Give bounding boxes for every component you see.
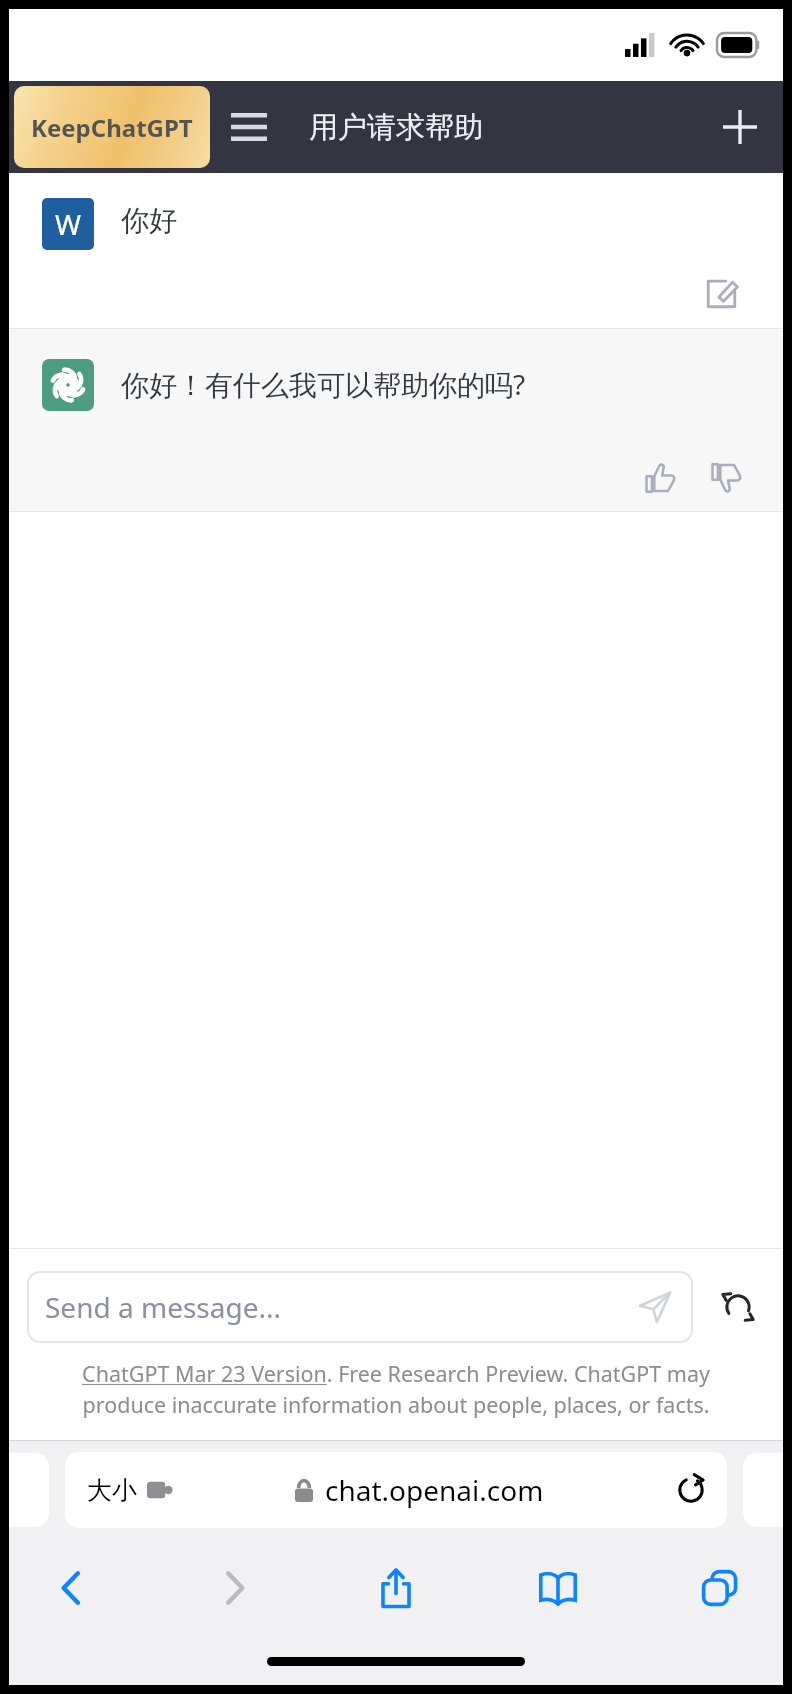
button[interactable]: Back bbox=[33, 1549, 111, 1627]
button[interactable]: KeepChatGPT bbox=[14, 86, 210, 168]
button[interactable]: Reload bbox=[667, 1466, 715, 1514]
button[interactable]: Tabs bbox=[681, 1549, 759, 1627]
staticText: chat.openai.com bbox=[325, 1471, 544, 1509]
staticText: ChatGPT Mar 23 Version. Free Research Pr… bbox=[45, 1359, 747, 1420]
staticText: 你好！有什么我可以帮助你的吗? bbox=[121, 365, 526, 403]
staticText: Send a message... bbox=[45, 1288, 281, 1326]
button[interactable]: New chat bbox=[709, 96, 771, 158]
button[interactable]: Forward bbox=[195, 1549, 273, 1627]
staticText: 你好 bbox=[121, 203, 177, 238]
button[interactable]: Bookmarks bbox=[519, 1549, 597, 1627]
button[interactable]: Menu bbox=[219, 97, 279, 157]
staticText: 用户请求帮助 bbox=[309, 109, 483, 146]
staticText: KeepChatGPT bbox=[31, 111, 193, 144]
button[interactable]: Regenerate response bbox=[709, 1278, 767, 1336]
button[interactable]: Good response bbox=[635, 453, 685, 503]
button[interactable]: Share bbox=[357, 1549, 435, 1627]
button[interactable]: 大小 bbox=[65, 1452, 727, 1528]
staticText: W bbox=[55, 205, 82, 243]
button[interactable]: Bad response bbox=[701, 453, 751, 503]
staticText: 大小 bbox=[87, 1475, 137, 1506]
button[interactable]: Send bbox=[633, 1285, 677, 1329]
button[interactable]: Send a message... bbox=[27, 1271, 693, 1343]
button[interactable]: Edit message bbox=[697, 268, 747, 318]
